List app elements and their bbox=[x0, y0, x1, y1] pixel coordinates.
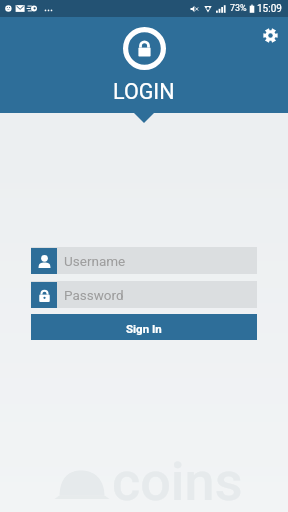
staticText: 73% bbox=[230, 3, 247, 14]
button[interactable]: Username bbox=[31, 247, 257, 274]
button[interactable]: Settings bbox=[256, 21, 284, 49]
button[interactable]: Password bbox=[31, 281, 257, 308]
staticText: coins bbox=[112, 450, 243, 512]
staticText: Password bbox=[64, 287, 124, 303]
button[interactable]: Sign In bbox=[31, 314, 257, 340]
staticText: 15:09 bbox=[257, 3, 282, 15]
staticText: LOGIN bbox=[113, 79, 175, 104]
staticText: Sign In bbox=[126, 322, 162, 335]
staticText: Username bbox=[64, 253, 126, 269]
